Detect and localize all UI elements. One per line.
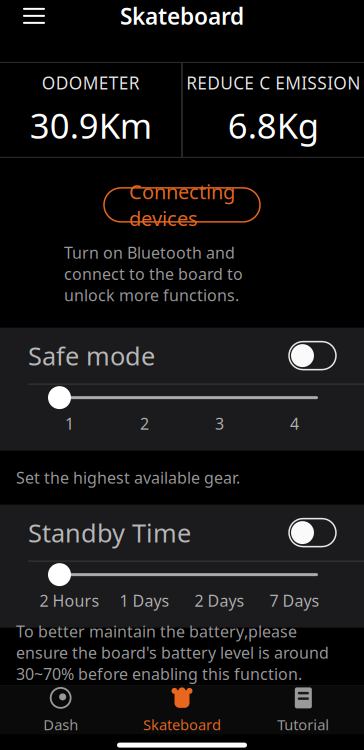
staticText: 30.9Km bbox=[30, 102, 152, 148]
button[interactable]: Menu bbox=[12, 0, 56, 38]
staticText: 3 bbox=[215, 413, 224, 434]
staticText: 2 Days bbox=[194, 590, 244, 611]
staticText: Set the highest available gear. bbox=[16, 467, 240, 488]
staticText: 2 bbox=[140, 413, 149, 434]
button[interactable]: Toggle bbox=[289, 519, 336, 547]
button[interactable]: Tutorial bbox=[243, 686, 364, 734]
staticText: ODOMETER bbox=[42, 71, 140, 94]
staticText: Skateboard bbox=[143, 715, 221, 734]
button[interactable]: Connecting devices bbox=[104, 188, 260, 222]
staticText: 2 Hours bbox=[39, 590, 99, 611]
button[interactable]: Dash bbox=[0, 686, 121, 734]
staticText: REDUCE C EMISSION bbox=[186, 71, 360, 94]
staticText: 1 Days bbox=[119, 590, 169, 611]
staticText: 1 bbox=[65, 413, 74, 434]
staticText: 6.8Kg bbox=[228, 102, 319, 148]
button[interactable]: Skateboard bbox=[121, 686, 243, 734]
staticText: Skateboard bbox=[120, 1, 244, 31]
staticText: Tutorial bbox=[277, 715, 329, 734]
button[interactable]: Toggle bbox=[289, 342, 336, 370]
staticText: 7 Days bbox=[269, 590, 319, 611]
staticText: Safe mode bbox=[28, 339, 155, 372]
staticText: Dash bbox=[43, 715, 78, 734]
staticText: To better maintain the battery,please en… bbox=[16, 621, 329, 684]
staticText: 4 bbox=[290, 413, 299, 434]
staticText: Connecting devices bbox=[129, 178, 235, 231]
staticText: Standby Time bbox=[28, 516, 191, 549]
staticText: Turn on Bluetooth and connect to the boa… bbox=[64, 242, 243, 306]
